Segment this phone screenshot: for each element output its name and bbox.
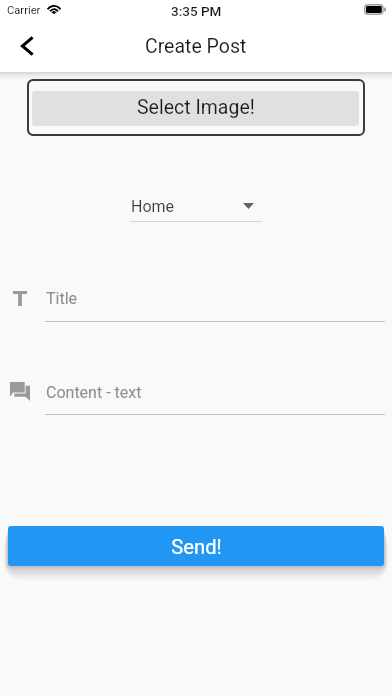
staticText: 3:35 PM <box>171 3 222 19</box>
staticText: Content - text <box>46 383 142 402</box>
button[interactable]: Send! <box>8 526 384 566</box>
staticText: Create Post <box>145 35 247 58</box>
button[interactable]: Home <box>130 193 262 222</box>
staticText: Send! <box>171 535 222 559</box>
staticText: Home <box>131 197 175 216</box>
staticText: Title <box>46 289 78 308</box>
staticText: Carrier <box>7 4 41 17</box>
button[interactable]: Back <box>8 27 46 65</box>
button[interactable]: Select Image! <box>32 91 359 126</box>
staticText: Select Image! <box>137 96 255 119</box>
